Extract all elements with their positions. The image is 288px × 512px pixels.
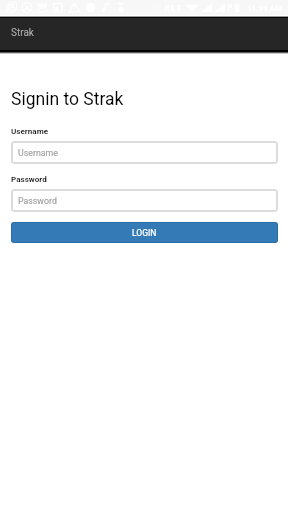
staticText: LOGIN [132,228,157,238]
staticText: Username [11,126,49,135]
button[interactable]: Username [11,141,278,164]
staticText: Signin to Strak [11,89,124,110]
staticText: Strak [11,27,34,39]
staticText: Password [11,174,47,183]
staticText: 11:19 AM [247,4,282,13]
staticText: Username [18,148,58,158]
button[interactable]: LOGIN [11,222,278,243]
staticText: Password [18,196,57,206]
button[interactable]: Password [11,189,278,212]
